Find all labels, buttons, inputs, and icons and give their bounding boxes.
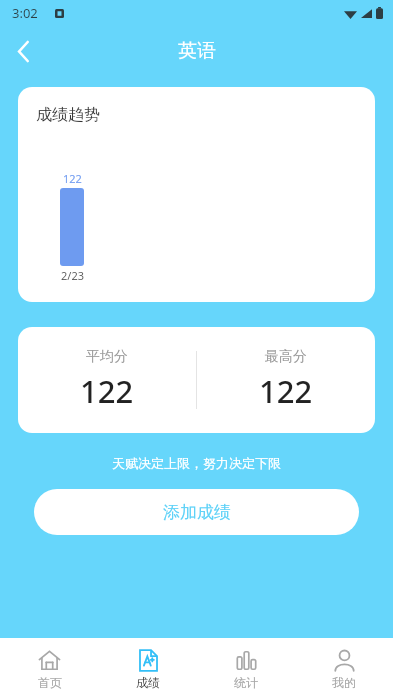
staticText: 成绩趋势 xyxy=(36,105,100,125)
button[interactable]: 首页 xyxy=(0,638,99,700)
button[interactable]: 我的 xyxy=(295,638,393,700)
staticText: 最高分 xyxy=(265,348,307,366)
staticText: 首页 xyxy=(38,675,62,690)
staticText: 平均分 xyxy=(86,348,128,366)
button[interactable]: 成绩 xyxy=(99,638,197,700)
staticText: 2/23 xyxy=(61,268,84,283)
staticText: 英语 xyxy=(178,39,216,63)
button[interactable]: 统计 xyxy=(197,638,295,700)
staticText: 122 xyxy=(259,370,313,412)
staticText: 我的 xyxy=(332,675,356,690)
button[interactable]: Back xyxy=(0,28,46,74)
staticText: 添加成绩 xyxy=(163,502,231,523)
staticText: 成绩 xyxy=(136,675,160,690)
staticText: 122 xyxy=(80,370,134,412)
button[interactable]: 添加成绩 xyxy=(34,489,359,535)
staticText: 统计 xyxy=(234,675,258,690)
staticText: 3:02 xyxy=(12,4,38,22)
staticText: 122 xyxy=(63,171,82,186)
staticText: 天赋决定上限，努力决定下限 xyxy=(0,455,393,471)
